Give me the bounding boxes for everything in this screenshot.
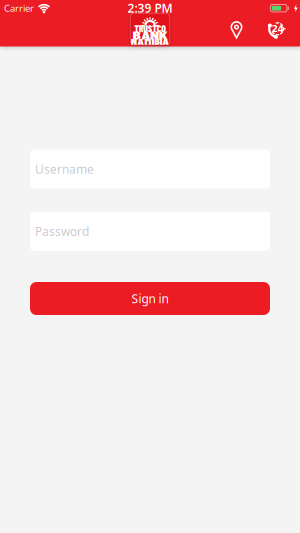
staticText: NAMIBIA <box>136 36 164 46</box>
button[interactable]: Username <box>30 149 270 188</box>
staticText: Password <box>35 223 89 239</box>
button[interactable]: Sign in <box>30 282 270 315</box>
staticText: Sign in <box>131 290 168 306</box>
button[interactable]: Branch locator <box>224 18 248 42</box>
button[interactable]: 24 hour support <box>263 18 289 42</box>
staticText: Carrier <box>4 2 34 14</box>
staticText: 24 <box>271 23 283 34</box>
staticText: BANK <box>140 29 160 41</box>
staticText: Username <box>35 161 94 177</box>
staticText: 2:39 PM <box>127 0 172 16</box>
button[interactable]: Password <box>30 212 270 251</box>
staticText: TRUSTCO <box>136 24 164 34</box>
